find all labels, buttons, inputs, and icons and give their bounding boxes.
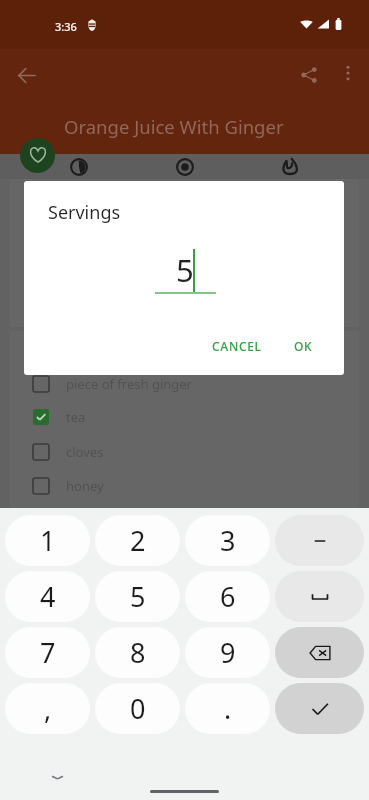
button[interactable]: 6 [185, 571, 270, 622]
staticText: 9 [220, 634, 236, 671]
button[interactable]: Calories [267, 154, 313, 179]
button[interactable]: 0 [95, 683, 180, 734]
staticText: 2 [130, 522, 146, 559]
staticText: , [44, 690, 52, 727]
button[interactable]: Done [275, 683, 364, 734]
staticText: 0 [130, 690, 146, 727]
button[interactable]: cloves [0, 437, 369, 467]
button[interactable]: 9 [185, 627, 270, 678]
button[interactable]: 7 [5, 627, 90, 678]
button[interactable]: 8 [95, 627, 180, 678]
button[interactable]: tea [0, 402, 369, 432]
button[interactable]: Add to favourites [20, 138, 55, 173]
staticText: tea [66, 408, 86, 426]
button[interactable]: 3 [185, 515, 270, 566]
staticText: 6 [220, 578, 236, 615]
staticText: OK [294, 338, 313, 354]
staticText: . [224, 690, 232, 727]
button[interactable]: More options [328, 53, 368, 93]
button[interactable]: CANCEL [204, 332, 270, 360]
button[interactable]: 4 [5, 571, 90, 622]
button[interactable]: Space [275, 571, 364, 622]
staticText: 3 [220, 522, 236, 559]
staticText: 5 [130, 578, 146, 615]
button[interactable]: 5 [95, 571, 180, 622]
staticText: 8 [130, 634, 146, 671]
staticText: 5 [176, 249, 194, 291]
staticText: 1 [40, 522, 56, 559]
staticText: honey [66, 477, 104, 495]
button[interactable]: . [185, 683, 270, 734]
button[interactable]: OK [286, 332, 321, 360]
staticText: CANCEL [212, 338, 262, 354]
staticText: 7 [40, 634, 56, 671]
button[interactable]: honey [0, 471, 369, 501]
staticText: Servings [48, 200, 121, 225]
staticText: Orange Juice With Ginger [64, 114, 284, 139]
button[interactable]: 1 [5, 515, 90, 566]
staticText: cloves [66, 443, 104, 461]
button[interactable]: piece of fresh ginger [0, 369, 369, 399]
button[interactable]: Backspace [275, 627, 364, 678]
button[interactable]: Preparation time [56, 154, 102, 179]
staticText: piece of fresh ginger [66, 375, 192, 393]
button[interactable]: Navigate up [4, 53, 48, 97]
button[interactable]: Minus [275, 515, 364, 566]
button[interactable]: Servings [162, 154, 208, 179]
button[interactable]: , [5, 683, 90, 734]
staticText: 3:36 [55, 19, 77, 34]
staticText: 4 [40, 578, 56, 615]
button[interactable]: Share [287, 53, 331, 97]
button[interactable]: Hide keyboard [42, 762, 72, 792]
button[interactable]: 2 [95, 515, 180, 566]
